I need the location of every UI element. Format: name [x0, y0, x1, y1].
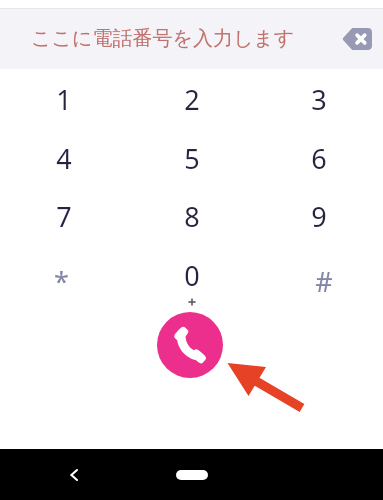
button[interactable]: 1: [0, 70, 128, 129]
staticText: 4: [56, 140, 72, 177]
button[interactable]: Home: [176, 470, 208, 480]
button[interactable]: 3: [255, 70, 383, 129]
staticText: 8: [184, 198, 200, 235]
staticText: 2: [184, 81, 200, 118]
staticText: 3: [311, 81, 327, 118]
button[interactable]: 7: [0, 187, 128, 246]
button[interactable]: 8: [128, 187, 256, 246]
button[interactable]: Backspace: [342, 28, 372, 50]
staticText: 0: [184, 257, 200, 294]
staticText: *: [54, 263, 69, 300]
staticText: 1: [56, 81, 72, 118]
button[interactable]: Back: [58, 459, 90, 491]
button[interactable]: 5: [128, 129, 256, 188]
staticText: ここに電話番号を入力します: [31, 26, 295, 51]
button[interactable]: Call: [157, 312, 223, 378]
staticText: 7: [56, 198, 72, 235]
button[interactable]: ここに電話番号を入力します: [0, 9, 383, 69]
button[interactable]: 6: [255, 129, 383, 188]
staticText: #: [315, 263, 333, 300]
staticText: 6: [311, 140, 327, 177]
button[interactable]: *: [0, 246, 128, 305]
button[interactable]: 9: [255, 187, 383, 246]
button[interactable]: 4: [0, 129, 128, 188]
button[interactable]: #: [255, 246, 383, 305]
button[interactable]: 2: [128, 70, 256, 129]
staticText: 5: [184, 140, 200, 177]
button[interactable]: 0: [128, 246, 256, 305]
staticText: 9: [311, 198, 327, 235]
